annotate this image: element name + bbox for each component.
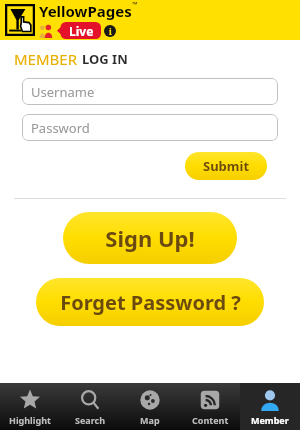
button[interactable]: Member <box>240 383 300 430</box>
staticText: Forget Password ? <box>60 289 241 316</box>
staticText: MEMBER <box>14 49 77 69</box>
button[interactable]: Search <box>60 383 120 430</box>
staticText: Password <box>31 119 90 137</box>
button[interactable]: Username <box>22 78 278 105</box>
staticText: Username <box>31 83 95 101</box>
staticText: Highlight <box>9 414 51 426</box>
button[interactable]: Sign Up! <box>63 212 237 264</box>
staticText: i <box>109 26 112 37</box>
button[interactable]: Information <box>104 25 116 37</box>
staticText: Live <box>69 23 94 39</box>
staticText: YellowPages <box>39 1 132 21</box>
button[interactable]: Submit <box>185 152 267 180</box>
staticText: Submit <box>203 157 250 175</box>
button[interactable]: Forget Password ? <box>36 278 264 326</box>
button[interactable]: Map <box>120 383 180 430</box>
staticText: ™ <box>132 0 138 10</box>
staticText: LOG IN <box>82 50 128 68</box>
staticText: Content <box>192 414 229 426</box>
button[interactable]: Content <box>180 383 240 430</box>
button[interactable]: Password <box>22 114 278 141</box>
button[interactable]: Highlight <box>0 383 60 430</box>
staticText: Sign Up! <box>105 223 195 253</box>
staticText: Search <box>75 414 106 426</box>
staticText: Map <box>140 414 160 426</box>
staticText: Member <box>251 414 289 426</box>
